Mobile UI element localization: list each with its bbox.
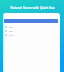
- button[interactable]: [3, 29, 60, 33]
- staticText: Natural Room with Quiet Sea: [10, 6, 55, 10]
- button[interactable]: Natural Room with Quiet Sea: [0, 0, 64, 13]
- button[interactable]: [3, 33, 60, 37]
- button[interactable]: [3, 25, 60, 29]
